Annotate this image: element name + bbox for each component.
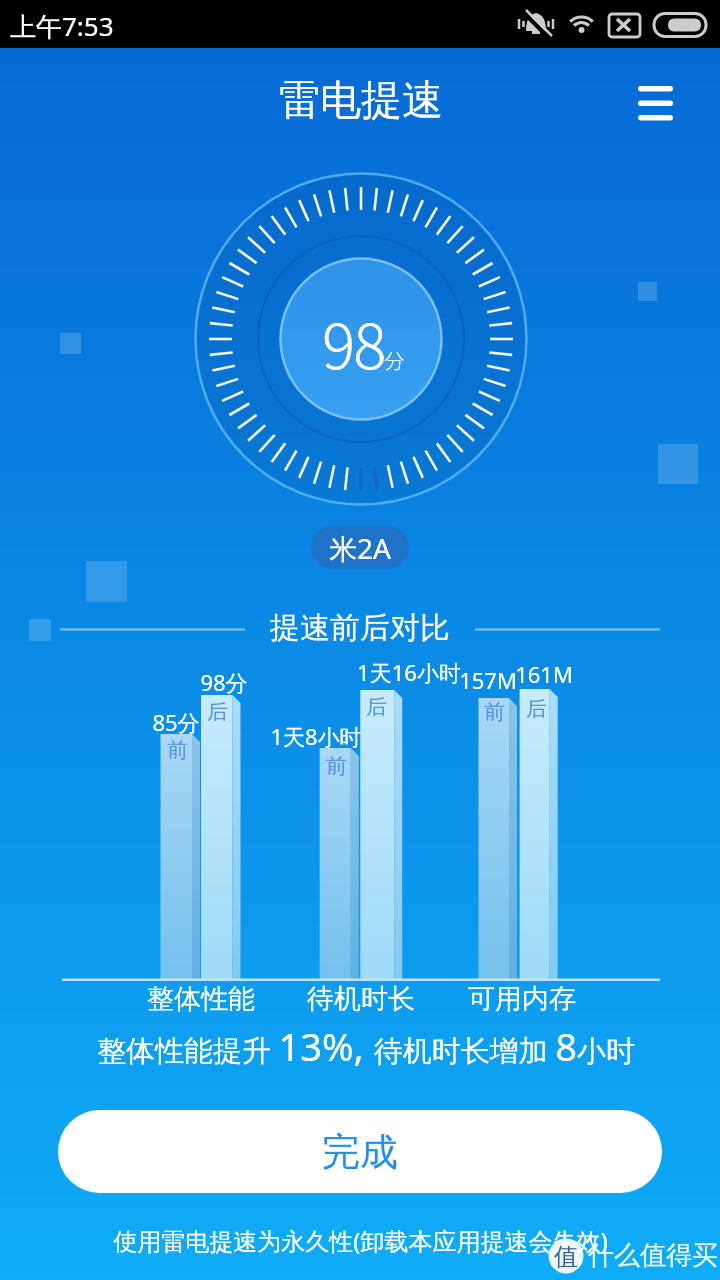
staticText: 上午7:53	[10, 8, 114, 44]
staticText: 98分	[200, 667, 248, 697]
staticText: 1天16小时	[357, 657, 461, 687]
staticText: 整体性能提升 13%, 待机时长增加 8小时	[97, 1020, 635, 1072]
staticText: 使用雷电提速为永久性(卸载本应用提速会失效)	[113, 1224, 608, 1257]
staticText: 可用内存	[468, 982, 576, 1016]
staticText: 后	[526, 696, 547, 722]
staticText: 85分	[152, 707, 200, 737]
staticText: 米2A	[329, 529, 391, 567]
staticText: 161M	[515, 659, 573, 689]
staticText: 待机时长	[307, 982, 415, 1016]
staticText: 前	[167, 737, 188, 763]
staticText: 98分	[322, 297, 405, 377]
staticText: 前	[484, 699, 505, 725]
staticText: 后	[366, 694, 387, 720]
button[interactable]: 米2A	[311, 526, 409, 569]
staticText: 后	[207, 699, 228, 725]
button[interactable]: 完成	[58, 1110, 662, 1193]
staticText: 整体性能	[147, 982, 255, 1016]
staticText: 完成	[322, 1128, 398, 1176]
button[interactable]	[620, 66, 692, 134]
staticText: 1天8小时	[270, 721, 362, 751]
staticText: 157M	[459, 665, 517, 695]
staticText: 提速前后对比	[270, 609, 450, 647]
staticText: 值	[554, 1242, 578, 1272]
staticText: 雷电提速	[279, 75, 443, 127]
staticText: 什么值得买	[588, 1239, 718, 1272]
staticText: 前	[326, 753, 347, 779]
